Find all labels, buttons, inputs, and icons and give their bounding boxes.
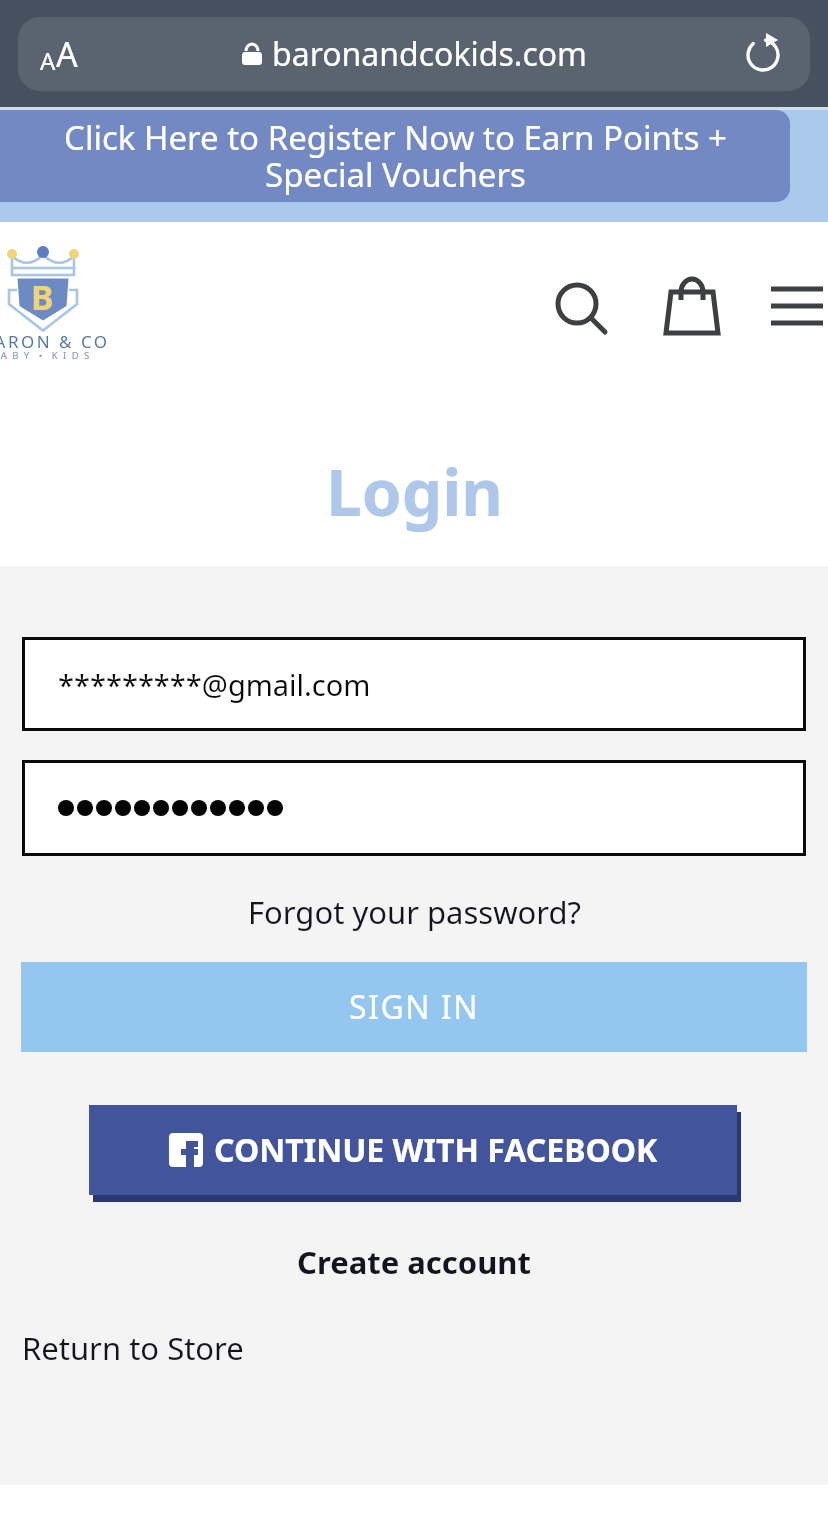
staticText: B: [31, 274, 54, 320]
staticText: *********@gmail.com: [58, 665, 371, 704]
staticText: baronandcokids.com: [272, 32, 588, 76]
button[interactable]: [663, 276, 723, 336]
button[interactable]: SIGN IN: [21, 962, 807, 1052]
staticText: CONTINUE WITH FACEBOOK: [214, 1128, 658, 1172]
button[interactable]: Forgot your password?: [248, 891, 581, 933]
button[interactable]: [769, 284, 825, 330]
staticText: BARON & CO: [0, 330, 110, 353]
button[interactable]: Create account: [297, 1241, 531, 1283]
button[interactable]: A: [18, 17, 810, 91]
staticText: Login: [326, 448, 503, 535]
button[interactable]: Click Here to Register Now to Earn Point…: [0, 110, 790, 202]
staticText: A: [40, 44, 56, 77]
staticText: SIGN IN: [349, 985, 480, 1029]
button[interactable]: *********@gmail.com: [22, 637, 806, 731]
staticText: Click Here to Register Now to Earn Point…: [64, 115, 727, 197]
button[interactable]: CONTINUE WITH FACEBOOK: [89, 1105, 737, 1195]
button[interactable]: [22, 760, 806, 856]
staticText: B A B Y • K I D S: [0, 349, 91, 362]
button[interactable]: Return to Store: [22, 1327, 244, 1369]
staticText: A: [56, 31, 78, 77]
button[interactable]: [550, 276, 614, 340]
